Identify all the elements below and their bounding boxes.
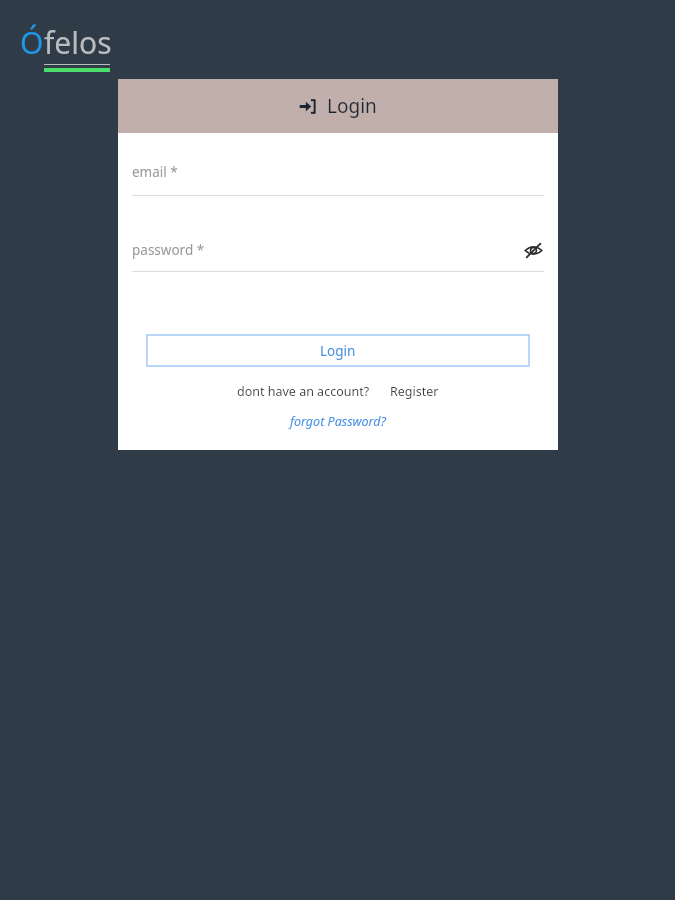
staticText: Login	[327, 93, 377, 119]
staticText: Register	[390, 383, 439, 400]
staticText: Login	[320, 342, 356, 360]
staticText: email *	[132, 163, 178, 181]
other: Login	[299, 98, 316, 115]
staticText: felos	[44, 22, 112, 63]
staticText: forgot Password?	[290, 413, 386, 430]
staticText: Ó	[20, 22, 44, 63]
button[interactable]: password *	[132, 239, 544, 272]
button[interactable]: Show password	[522, 239, 544, 261]
button[interactable]: forgot Password?	[290, 413, 386, 430]
button[interactable]: Ó	[20, 22, 112, 72]
button[interactable]: email *	[132, 163, 544, 196]
button[interactable]: Login	[147, 335, 529, 366]
staticText: dont have an account?	[237, 383, 370, 400]
staticText: password *	[132, 241, 205, 259]
button[interactable]: Register	[390, 383, 439, 400]
